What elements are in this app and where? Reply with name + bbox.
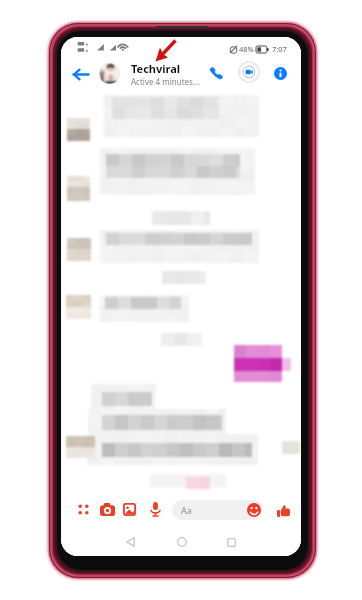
staticText: Aa bbox=[181, 504, 192, 516]
button[interactable]: Camera bbox=[97, 499, 117, 519]
button[interactable]: Aa bbox=[172, 500, 263, 520]
button[interactable]: More options bbox=[73, 499, 93, 519]
button[interactable]: Call bbox=[205, 62, 227, 84]
staticText: Active 4 minutes... bbox=[131, 76, 200, 87]
staticText: 7:07 bbox=[272, 44, 287, 54]
button[interactable]: Recent apps bbox=[216, 530, 247, 554]
button[interactable]: Gallery bbox=[119, 499, 139, 519]
button[interactable]: Back bbox=[115, 530, 146, 554]
button[interactable]: Send a Like bbox=[273, 500, 293, 520]
button[interactable]: Conversation information bbox=[269, 62, 291, 84]
button[interactable]: Voice message bbox=[145, 499, 165, 519]
button[interactable]: Stickers bbox=[244, 500, 264, 520]
staticText: 48% bbox=[239, 44, 254, 54]
button[interactable]: Video call bbox=[236, 59, 262, 85]
button[interactable]: Techviral bbox=[99, 60, 244, 87]
button[interactable]: Home bbox=[166, 530, 197, 554]
staticText: Techviral bbox=[131, 61, 181, 76]
button[interactable]: Back bbox=[68, 63, 92, 85]
